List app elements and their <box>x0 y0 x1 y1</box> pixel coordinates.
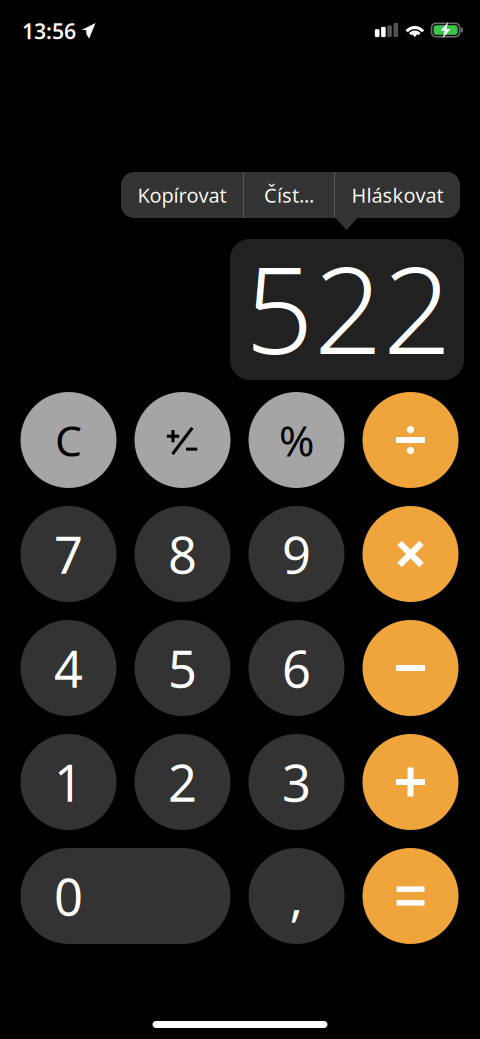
staticText: 7 <box>54 520 83 588</box>
staticText: 0 <box>54 862 83 930</box>
button[interactable] <box>362 506 458 602</box>
button[interactable]: Číst... <box>244 172 334 218</box>
staticText: Kopírovat <box>137 182 226 208</box>
button[interactable]: Kopírovat <box>121 172 243 218</box>
button[interactable]: 6 <box>248 620 344 716</box>
staticText: 9 <box>282 520 311 588</box>
staticText: 13:56 <box>22 17 76 45</box>
button[interactable]: 7 <box>20 506 116 602</box>
button[interactable]: , <box>248 848 344 944</box>
button[interactable]: 5 <box>134 620 230 716</box>
button[interactable] <box>362 620 458 716</box>
staticText: 522 <box>245 228 452 387</box>
staticText: 3 <box>282 748 311 816</box>
staticText: Číst... <box>264 182 314 208</box>
button[interactable]: 8 <box>134 506 230 602</box>
button[interactable]: % <box>248 392 344 488</box>
button[interactable]: Hláskovat <box>335 172 460 218</box>
staticText: 5 <box>168 634 197 702</box>
staticText: 1 <box>54 748 83 816</box>
button[interactable] <box>134 392 230 488</box>
button[interactable]: 0 <box>20 848 230 944</box>
button[interactable]: 1 <box>20 734 116 830</box>
button[interactable]: 2 <box>134 734 230 830</box>
staticText: , <box>289 862 303 930</box>
staticText: 2 <box>168 748 197 816</box>
button[interactable] <box>362 392 458 488</box>
button[interactable]: 9 <box>248 506 344 602</box>
staticText: 6 <box>282 634 311 702</box>
button[interactable] <box>362 734 458 830</box>
button[interactable]: C <box>20 392 116 488</box>
staticText: % <box>279 412 314 468</box>
button[interactable]: 4 <box>20 620 116 716</box>
staticText: C <box>55 412 82 468</box>
staticText: 4 <box>54 634 83 702</box>
staticText: Hláskovat <box>351 182 443 208</box>
button[interactable]: 3 <box>248 734 344 830</box>
staticText: 8 <box>168 520 197 588</box>
button[interactable] <box>362 848 458 944</box>
